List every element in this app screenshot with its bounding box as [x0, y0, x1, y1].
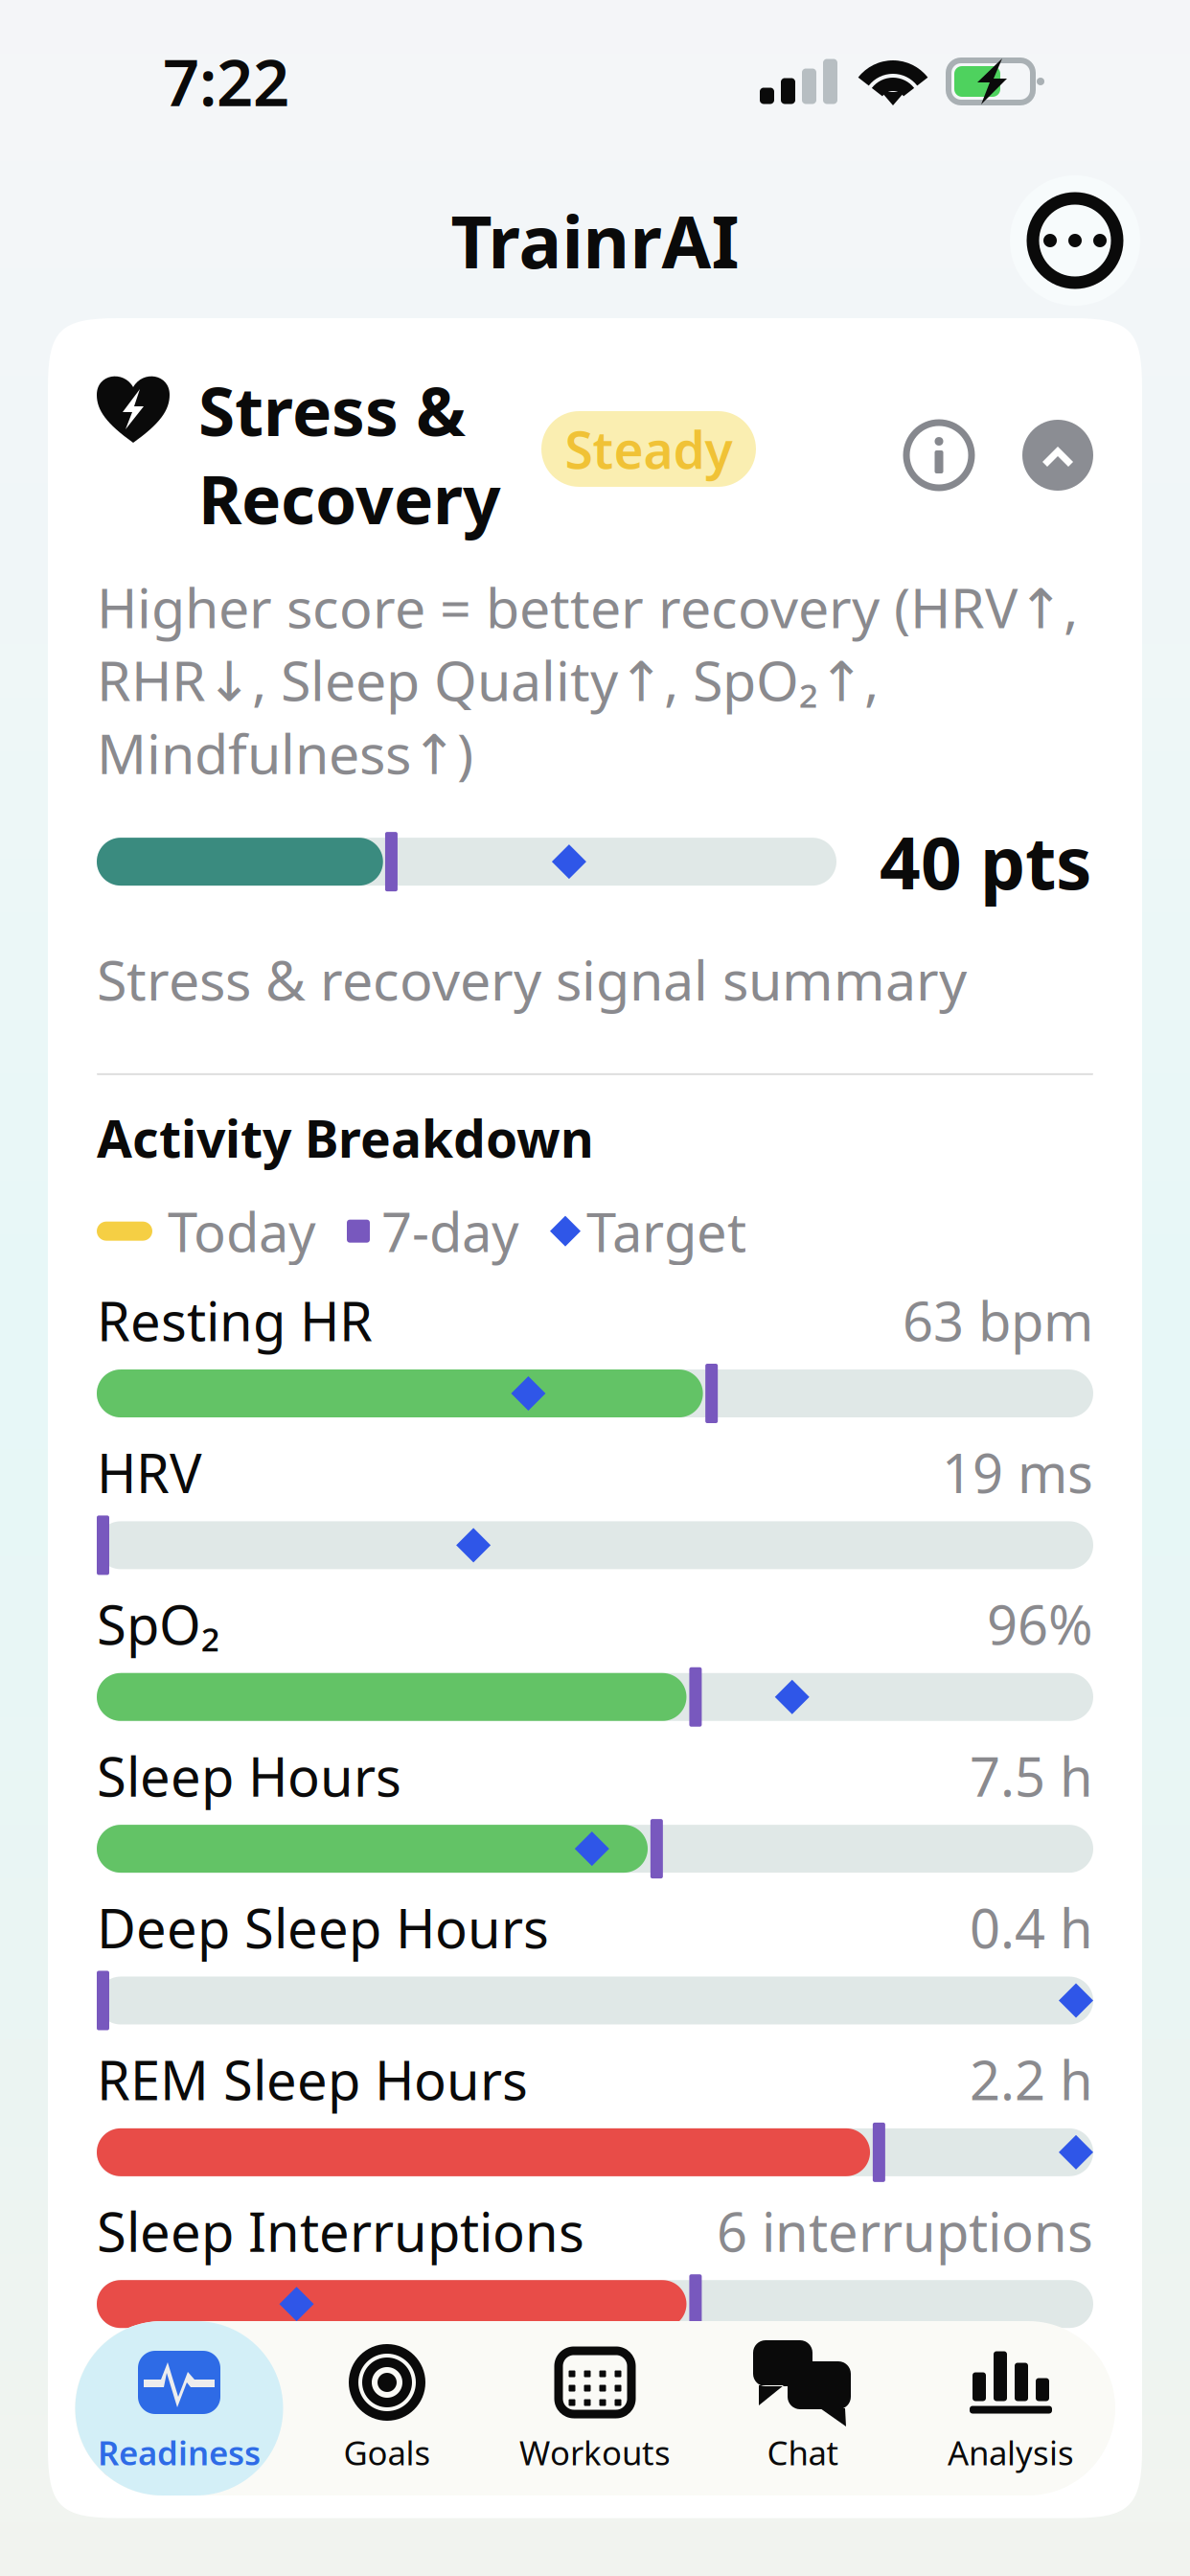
staticText: Chat — [767, 2430, 839, 2474]
staticText: 0.7 h — [970, 2347, 1093, 2418]
staticText: 96% — [987, 1588, 1093, 1660]
staticText: Analysis — [948, 2430, 1074, 2474]
button[interactable]: Chat — [699, 2321, 907, 2495]
staticText: 63 bpm — [903, 1285, 1093, 1356]
staticText: Steady — [565, 415, 732, 483]
staticText: HRV — [97, 1437, 202, 1508]
staticText: Stress & Recovery — [198, 366, 501, 543]
staticText: Higher score = better recovery (HRV↑, RH… — [97, 570, 1078, 789]
staticText: REM Sleep Hours — [97, 2044, 528, 2115]
staticText: Sleep Hours — [97, 1740, 401, 1811]
button[interactable]: Analysis — [907, 2321, 1115, 2495]
staticText: TrainrAI — [451, 193, 739, 288]
button[interactable]: Info — [905, 422, 973, 489]
staticText: Activity Breakdown — [97, 1104, 594, 1172]
staticText: Sleep Interruptions — [97, 2195, 584, 2267]
staticText: Resting HR — [97, 1285, 373, 1356]
staticText: 6 interruptions — [717, 2195, 1093, 2267]
staticText: 2.2 h — [970, 2044, 1093, 2115]
staticText: Today — [168, 1196, 316, 1267]
staticText: Target — [586, 1196, 746, 1267]
button[interactable]: Goals — [283, 2321, 491, 2495]
button[interactable]: More options — [1010, 175, 1140, 306]
staticText: 40 pts — [880, 814, 1091, 909]
staticText: Awake Sleep Hours — [97, 2347, 582, 2418]
button[interactable]: Collapse — [1022, 420, 1093, 491]
staticText: 7:22 — [163, 39, 289, 124]
staticText: SpO₂ — [97, 1588, 220, 1660]
staticText: Readiness — [98, 2430, 261, 2474]
button[interactable]: Workouts — [491, 2321, 699, 2495]
staticText: 19 ms — [942, 1437, 1093, 1508]
staticText: Stress & recovery signal summary — [97, 943, 967, 1016]
staticText: 7.5 h — [970, 1740, 1093, 1811]
staticText: Workouts — [519, 2430, 671, 2474]
button[interactable]: Readiness — [75, 2321, 283, 2495]
staticText: 7-day — [381, 1196, 519, 1267]
staticText: Deep Sleep Hours — [97, 1892, 549, 1963]
staticText: 0.4 h — [970, 1892, 1093, 1963]
staticText: Goals — [343, 2430, 431, 2474]
